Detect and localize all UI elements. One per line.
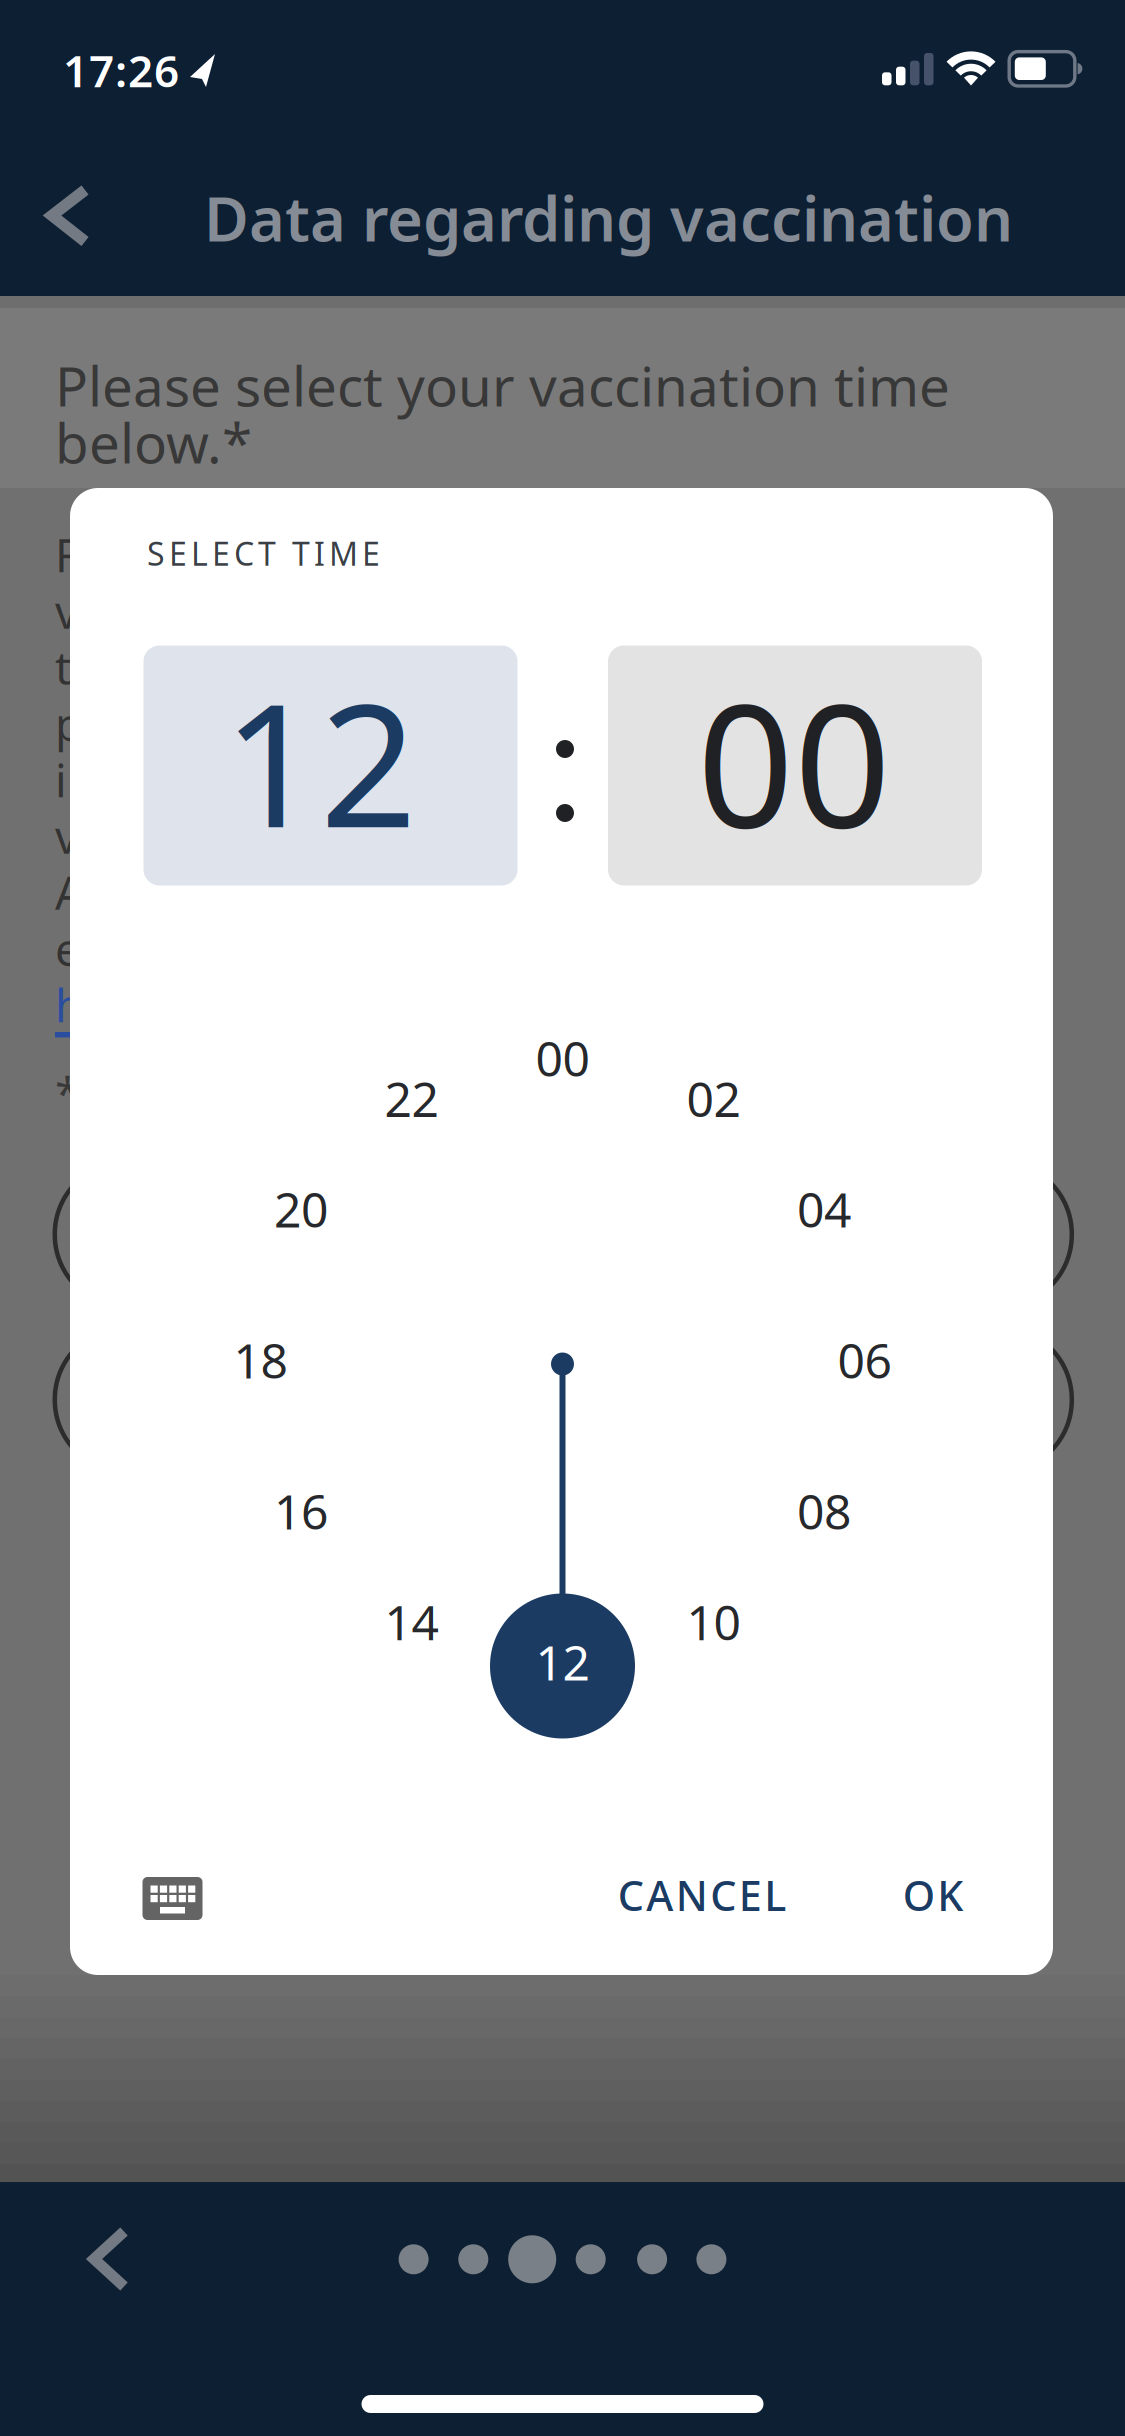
staticText: v: [55, 806, 78, 866]
staticText: 00: [535, 1026, 589, 1090]
staticText: e: [55, 918, 81, 979]
staticText: 02: [686, 1067, 740, 1130]
button[interactable]: [30, 162, 120, 272]
button[interactable]: [60, 2204, 160, 2314]
button[interactable]: OK: [903, 1868, 963, 1922]
staticText: t: [55, 637, 71, 697]
staticText: 12: [223, 649, 417, 874]
staticText: F: [55, 524, 79, 585]
button[interactable]: 20: [274, 1177, 328, 1241]
staticText: SELECT TIME: [147, 532, 380, 574]
staticText: 17:26: [63, 41, 179, 99]
staticText: 18: [233, 1328, 287, 1392]
button[interactable]: 02: [686, 1067, 740, 1130]
staticText: Please select your vaccination time: [55, 349, 950, 422]
staticText: v: [55, 581, 78, 641]
staticText: 00: [697, 649, 891, 874]
button[interactable]: 00: [535, 1026, 589, 1090]
staticText: 08: [797, 1479, 851, 1543]
staticText: 04: [797, 1177, 851, 1241]
staticText: 10: [686, 1590, 740, 1653]
staticText: below.*: [55, 406, 252, 479]
button[interactable]: 18: [233, 1328, 287, 1392]
staticText: 14: [384, 1590, 438, 1653]
staticText: A: [55, 862, 84, 922]
button[interactable]: CANCEL: [618, 1868, 786, 1922]
button[interactable]: 22: [384, 1067, 438, 1130]
button[interactable]: 06: [837, 1328, 891, 1392]
staticText: 06: [837, 1328, 891, 1392]
staticText: *: [55, 1063, 80, 1123]
button[interactable]: 12: [143, 645, 517, 885]
button[interactable]: 12: [490, 1593, 635, 1738]
staticText: 12: [535, 1630, 589, 1694]
staticText: CANCEL: [618, 1868, 786, 1922]
staticText: OK: [903, 1868, 963, 1922]
staticText: Data regarding vaccination: [204, 177, 1013, 258]
staticText: 22: [384, 1067, 438, 1130]
button[interactable]: 04: [797, 1177, 851, 1241]
staticText: i: [55, 749, 67, 810]
button[interactable]: 10: [686, 1590, 740, 1653]
staticText: h: [55, 974, 83, 1035]
button[interactable]: [142, 1877, 202, 1920]
button[interactable]: 00: [608, 645, 982, 885]
button[interactable]: 14: [384, 1590, 438, 1653]
staticText: 20: [274, 1177, 328, 1241]
staticText: 16: [274, 1479, 328, 1543]
staticText: p: [55, 693, 83, 754]
button[interactable]: 08: [797, 1479, 851, 1543]
button[interactable]: 16: [274, 1479, 328, 1543]
